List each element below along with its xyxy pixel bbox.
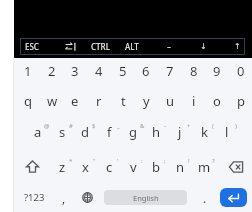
button[interactable]: Change keyboard	[75, 182, 99, 212]
staticText: a	[34, 123, 42, 141]
staticText: z	[59, 158, 66, 176]
staticText: x	[82, 158, 89, 176]
button[interactable]: q	[16, 85, 40, 116]
staticText: &	[140, 122, 145, 130]
staticText: @	[44, 122, 50, 130]
staticText: "	[93, 157, 96, 165]
staticText: 3	[71, 62, 79, 80]
staticText: q	[24, 92, 32, 110]
button[interactable]: j	[170, 116, 194, 147]
button[interactable]: Tab	[54, 39, 86, 54]
staticText: 7	[166, 62, 174, 80]
staticText: 0	[237, 62, 245, 80]
button[interactable]: r	[87, 85, 111, 116]
staticText: ↓	[200, 42, 207, 51]
staticText: j	[178, 123, 182, 141]
button[interactable]: k	[194, 116, 218, 147]
staticText: '	[117, 157, 119, 165]
staticText: n	[176, 158, 185, 176]
button[interactable]: ↓	[187, 39, 219, 54]
button[interactable]: y	[134, 85, 158, 116]
button[interactable]: n	[170, 151, 194, 182]
button[interactable]: 4	[87, 55, 111, 86]
staticText: English	[133, 193, 159, 203]
button[interactable]: ALT	[116, 39, 148, 54]
staticText: d	[81, 123, 89, 141]
button[interactable]: ESC	[16, 39, 48, 54]
staticText: 1	[24, 62, 32, 80]
staticText: 8	[190, 62, 198, 80]
staticText: c	[106, 158, 113, 176]
staticText: h	[152, 123, 161, 141]
staticText: y	[143, 92, 150, 110]
staticText: ;	[164, 157, 166, 165]
button[interactable]: l	[217, 116, 241, 147]
button[interactable]: 1	[16, 55, 40, 86]
button[interactable]: e	[63, 85, 87, 116]
button[interactable]: 7	[158, 55, 182, 86]
staticText: i	[192, 92, 196, 110]
staticText: s	[59, 123, 66, 141]
button[interactable]: u	[158, 85, 182, 116]
button[interactable]: ?123	[17, 182, 52, 212]
staticText: +	[187, 122, 191, 130]
staticText: o	[213, 92, 221, 110]
button[interactable]: 5	[111, 55, 135, 86]
button[interactable]: d	[75, 116, 99, 147]
button[interactable]: 6	[134, 55, 158, 86]
button[interactable]: v	[123, 151, 147, 182]
staticText: l	[225, 123, 229, 141]
button[interactable]: a	[28, 116, 52, 147]
staticText: r	[96, 92, 102, 110]
staticText: $	[92, 122, 96, 130]
button[interactable]: z	[52, 151, 76, 182]
staticText: b	[152, 158, 160, 176]
staticText: ?	[212, 157, 215, 165]
button[interactable]: t	[111, 85, 135, 116]
button[interactable]: ,	[52, 182, 76, 212]
staticText: w	[47, 92, 58, 110]
staticText: :	[141, 157, 143, 165]
button[interactable]: s	[52, 116, 76, 147]
button[interactable]: f	[99, 116, 123, 147]
button[interactable]: c	[99, 151, 123, 182]
button[interactable]: Shift	[15, 151, 50, 182]
button[interactable]: w	[40, 85, 64, 116]
button[interactable]: 8	[182, 55, 206, 86]
staticText: CTRL	[91, 41, 110, 52]
button[interactable]: i	[182, 85, 206, 116]
button[interactable]: 3	[63, 55, 87, 86]
staticText: m	[198, 158, 211, 176]
button[interactable]: o	[205, 85, 229, 116]
button[interactable]: b	[146, 151, 170, 182]
button[interactable]: 0	[229, 55, 252, 86]
button[interactable]: 2	[40, 55, 64, 86]
button[interactable]: –	[153, 39, 185, 54]
staticText: t	[121, 92, 126, 110]
staticText: #	[69, 122, 73, 130]
staticText: 5	[119, 62, 127, 80]
button[interactable]: g	[123, 116, 147, 147]
staticText: u	[166, 92, 175, 110]
button[interactable]: p	[229, 85, 252, 116]
staticText: ,	[62, 190, 66, 206]
staticText: ↑	[234, 42, 241, 51]
staticText: p	[237, 92, 245, 110]
button[interactable]: Enter	[220, 188, 247, 207]
button[interactable]: x	[75, 151, 99, 182]
button[interactable]: English	[104, 190, 187, 205]
staticText: 4	[95, 62, 103, 80]
staticText: 6	[142, 62, 150, 80]
button[interactable]: .	[193, 182, 217, 212]
button[interactable]: m	[194, 151, 218, 182]
button[interactable]: h	[146, 116, 170, 147]
button[interactable]: ↑	[221, 39, 252, 54]
staticText: _	[117, 122, 120, 130]
button[interactable]: 9	[205, 55, 229, 86]
button[interactable]: CTRL	[84, 39, 116, 54]
staticText: v	[130, 158, 137, 176]
staticText: (	[212, 122, 214, 130]
button[interactable]: Backspace	[218, 151, 252, 182]
staticText: ?123	[24, 191, 45, 204]
staticText: 2	[48, 62, 56, 80]
